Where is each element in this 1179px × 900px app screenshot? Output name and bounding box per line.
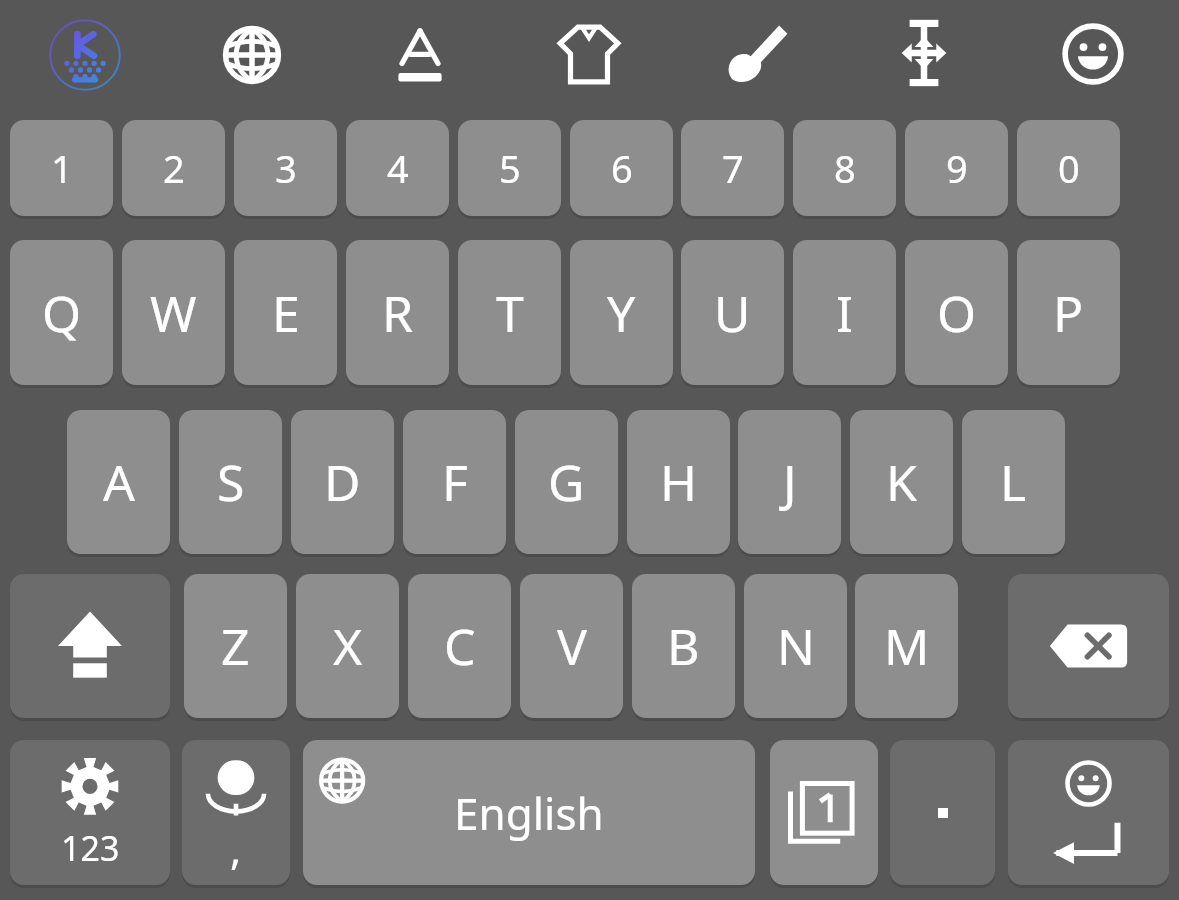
button[interactable]: 5 xyxy=(458,120,561,216)
staticText: Q xyxy=(42,279,82,347)
staticText: L xyxy=(1000,448,1027,516)
staticText: 3 xyxy=(275,142,297,194)
staticText: S xyxy=(217,448,245,516)
staticText: N xyxy=(777,612,815,680)
button[interactable]: P xyxy=(1017,240,1120,385)
button[interactable]: B xyxy=(632,574,735,718)
button[interactable]: X xyxy=(296,574,399,718)
staticText: X xyxy=(333,612,363,680)
staticText: 1 xyxy=(51,142,73,194)
button[interactable]: G xyxy=(515,410,618,554)
staticText: A xyxy=(103,448,135,516)
button[interactable]: N xyxy=(744,574,847,718)
staticText: O xyxy=(937,279,977,347)
staticText: 7 xyxy=(722,142,744,194)
staticText: 123 xyxy=(61,825,120,871)
button[interactable]: Switch layout xyxy=(770,740,878,885)
button[interactable]: English xyxy=(303,740,755,885)
button[interactable]: 3 xyxy=(234,120,337,216)
button[interactable]: 7 xyxy=(681,120,784,216)
button[interactable]: L xyxy=(962,410,1065,554)
button[interactable]: 6 xyxy=(570,120,673,216)
button[interactable]: M xyxy=(855,574,958,718)
staticText: V xyxy=(557,612,587,680)
staticText: B xyxy=(667,612,700,680)
button[interactable]: Period xyxy=(890,740,995,885)
staticText: C xyxy=(444,612,476,680)
button[interactable]: Brush xyxy=(716,16,792,90)
button[interactable]: Q xyxy=(10,240,113,385)
button[interactable]: 1 xyxy=(10,120,113,216)
staticText: 2 xyxy=(163,142,185,194)
button[interactable]: 9 xyxy=(905,120,1008,216)
staticText: E xyxy=(272,279,300,347)
button[interactable]: S xyxy=(179,410,282,554)
button[interactable]: U xyxy=(681,240,784,385)
button[interactable]: Enter xyxy=(1008,740,1169,885)
button[interactable]: F xyxy=(403,410,506,554)
button[interactable]: O xyxy=(905,240,1008,385)
button[interactable]: Voice input xyxy=(182,740,290,885)
button[interactable]: H xyxy=(627,410,730,554)
button[interactable]: C xyxy=(408,574,511,718)
staticText: 0 xyxy=(1058,142,1080,194)
button[interactable]: 2 xyxy=(122,120,225,216)
staticText: Z xyxy=(221,612,250,680)
staticText: J xyxy=(783,448,797,516)
staticText: 6 xyxy=(611,142,633,194)
button[interactable]: Resize keyboard xyxy=(888,16,960,90)
staticText: 8 xyxy=(834,142,856,194)
staticText: 5 xyxy=(499,142,521,194)
staticText: F xyxy=(442,448,468,516)
staticText: P xyxy=(1053,279,1084,347)
staticText: R xyxy=(382,279,414,347)
button[interactable]: Backspace xyxy=(1008,574,1169,718)
button[interactable]: T xyxy=(458,240,561,385)
staticText: G xyxy=(548,448,585,516)
staticText: W xyxy=(150,279,197,347)
button[interactable]: W xyxy=(122,240,225,385)
button[interactable]: 0 xyxy=(1017,120,1120,216)
staticText: English xyxy=(454,783,604,843)
staticText: M xyxy=(884,612,930,680)
staticText: K xyxy=(886,448,917,516)
button[interactable]: R xyxy=(346,240,449,385)
button[interactable]: Z xyxy=(184,574,287,718)
button[interactable]: E xyxy=(234,240,337,385)
button[interactable]: Font xyxy=(384,20,456,88)
staticText: H xyxy=(660,448,698,516)
button[interactable]: I xyxy=(793,240,896,385)
staticText: 4 xyxy=(387,142,409,194)
staticText: , xyxy=(230,820,242,877)
button[interactable]: Change language xyxy=(216,22,288,88)
button[interactable]: 8 xyxy=(793,120,896,216)
staticText: D xyxy=(324,448,361,516)
button[interactable]: Keyboard menu xyxy=(48,18,122,92)
button[interactable]: Settings xyxy=(10,740,170,885)
button[interactable]: K xyxy=(850,410,953,554)
button[interactable]: Shift xyxy=(10,574,170,718)
button[interactable]: Y xyxy=(570,240,673,385)
button[interactable]: Emoji xyxy=(1058,20,1128,88)
button[interactable]: V xyxy=(520,574,623,718)
button[interactable]: D xyxy=(291,410,394,554)
staticText: T xyxy=(496,279,524,347)
button[interactable]: J xyxy=(738,410,841,554)
button[interactable]: 4 xyxy=(346,120,449,216)
staticText: U xyxy=(714,279,751,347)
button[interactable]: Theme xyxy=(552,16,626,90)
staticText: I xyxy=(836,279,853,347)
staticText: Y xyxy=(607,279,636,347)
staticText: 9 xyxy=(946,142,968,194)
button[interactable]: A xyxy=(67,410,170,554)
